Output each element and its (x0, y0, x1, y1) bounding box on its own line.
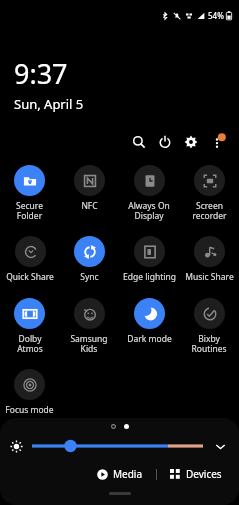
button[interactable]: Focus mode (3, 367, 56, 418)
staticText: Devices (186, 467, 222, 481)
staticText: Sun, April 5 (14, 95, 84, 113)
staticText: Sync (80, 271, 99, 283)
button[interactable]: Secure Folder (12, 163, 47, 223)
staticText: 9:37 (14, 55, 68, 92)
staticText: Quick Share (6, 271, 54, 283)
staticText: Edge lighting (123, 271, 176, 283)
button[interactable]: Brightness (32, 437, 203, 455)
staticText: Dark mode (127, 333, 172, 345)
button[interactable]: NFC (72, 163, 107, 214)
staticText: Dolby Atmos (17, 333, 43, 354)
button[interactable]: More options (204, 129, 230, 155)
button[interactable]: Screen recorder (190, 163, 229, 223)
button[interactable]: Dark mode (125, 296, 174, 347)
button[interactable]: Search (126, 129, 152, 155)
staticText: Screen recorder (192, 200, 227, 221)
button[interactable]: Bixby Routines (189, 296, 229, 356)
button[interactable]: Edge lighting (121, 234, 178, 285)
staticText: Music Share (185, 271, 234, 283)
button[interactable]: Samsung Kids (68, 296, 110, 356)
button[interactable]: Quick Share (4, 234, 56, 285)
staticText: Always On Display (128, 200, 170, 221)
staticText: Focus mode (5, 404, 54, 416)
staticText: NFC (81, 200, 98, 212)
button[interactable]: Expand (211, 437, 229, 455)
button[interactable]: Settings (178, 129, 204, 155)
button[interactable]: Dolby Atmos (12, 296, 47, 356)
button[interactable]: Devices (165, 463, 227, 485)
button[interactable]: Power (152, 129, 178, 155)
staticText: Secure Folder (16, 200, 43, 221)
button[interactable]: Media (92, 463, 148, 485)
staticText: Samsung Kids (70, 333, 108, 354)
staticText: Bixby Routines (191, 333, 227, 354)
button[interactable]: Always On Display (126, 163, 172, 223)
staticText: 54% (208, 10, 224, 21)
staticText: Media (113, 467, 143, 481)
button[interactable]: Sync (72, 234, 107, 285)
button[interactable]: Music Share (183, 234, 236, 285)
